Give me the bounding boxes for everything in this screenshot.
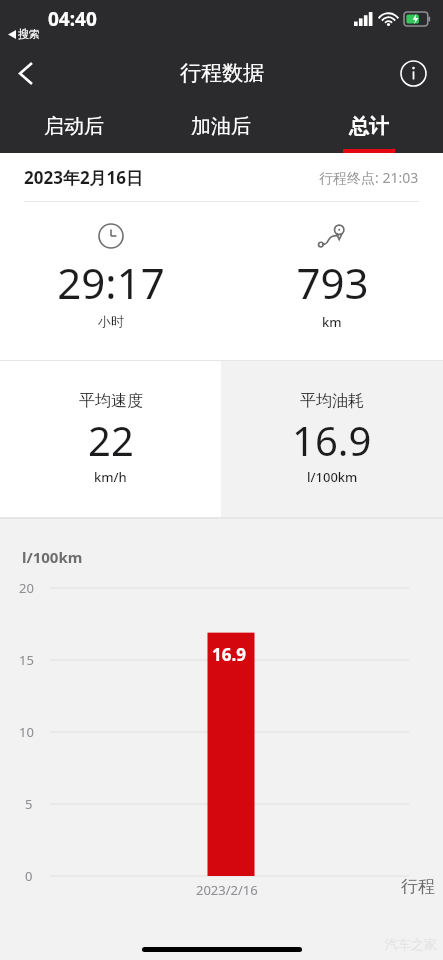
staticText: 20 [19, 579, 34, 597]
staticText: 2023/2/16 [196, 881, 258, 899]
staticText: 5 [25, 795, 33, 813]
staticText: 平均速度 [79, 391, 143, 411]
staticText: 0 [25, 867, 33, 885]
staticText: 加油后 [191, 114, 251, 139]
staticText: 793 [296, 254, 369, 311]
staticText: km [322, 313, 342, 331]
staticText: 16.9 [292, 413, 372, 467]
staticText: 04:40 [48, 6, 97, 32]
button[interactable]: 29:17 [0, 202, 221, 360]
staticText: 小时 [98, 313, 124, 329]
staticText: 15 [19, 651, 34, 669]
staticText: 16.9 [212, 643, 246, 666]
staticText: 2023年2月16日 [24, 166, 144, 189]
staticText: 启动后 [44, 114, 104, 139]
button[interactable]: Info [391, 51, 435, 95]
staticText: 22 [88, 413, 134, 467]
button[interactable]: Back [0, 47, 52, 99]
staticText: 搜索 [18, 27, 40, 41]
button[interactable]: 启动后 [0, 99, 147, 153]
staticText: 行程数据 [180, 60, 264, 86]
staticText: 10 [19, 723, 34, 741]
staticText: l/100km [22, 547, 83, 567]
staticText: 汽车之家 [385, 936, 437, 952]
button[interactable]: 平均速度 [0, 361, 221, 517]
staticText: 29:17 [57, 254, 165, 311]
staticText: 平均油耗 [300, 391, 364, 411]
staticText: 行程终点: 21:03 [319, 168, 419, 187]
button[interactable]: 总计 [295, 99, 443, 153]
staticText: km/h [94, 468, 127, 486]
button[interactable]: 平均油耗 [221, 361, 443, 517]
staticText: l/100km [307, 468, 358, 486]
button[interactable]: 加油后 [147, 99, 295, 153]
staticText: 行程 [401, 876, 435, 897]
staticText: 总计 [349, 114, 389, 139]
button[interactable]: 793 [221, 202, 443, 360]
